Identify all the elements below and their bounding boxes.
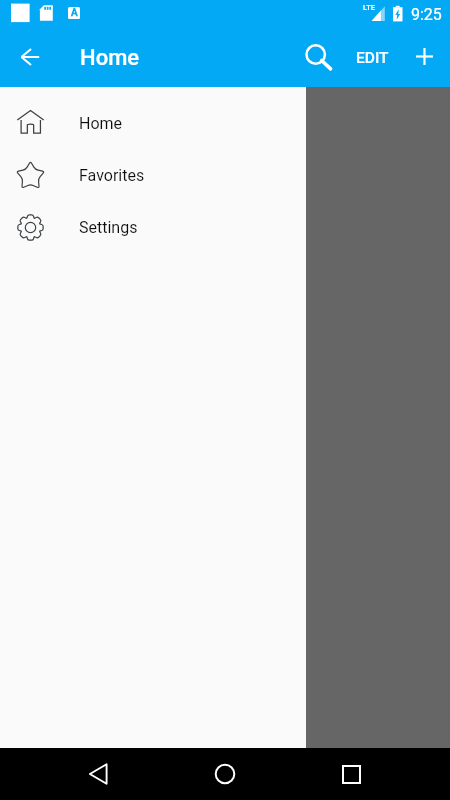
button[interactable]: Navigate up: [8, 33, 56, 81]
button[interactable]: Home: [201, 750, 249, 798]
button[interactable]: Settings: [0, 201, 306, 253]
staticText: Settings: [79, 218, 138, 237]
button[interactable]: Recent apps: [327, 750, 375, 798]
button[interactable]: EDIT: [346, 27, 398, 88]
button[interactable]: Favorites: [0, 149, 306, 201]
staticText: 9:25: [411, 5, 442, 24]
staticText: Home: [79, 114, 123, 133]
staticText: EDIT: [356, 49, 389, 67]
staticText: A: [71, 7, 78, 19]
staticText: Home: [80, 45, 140, 71]
button[interactable]: Search: [295, 33, 343, 81]
button[interactable]: Home: [0, 97, 306, 149]
button[interactable]: Back: [75, 750, 123, 798]
staticText: LTE: [363, 3, 376, 12]
staticText: Favorites: [79, 166, 145, 185]
button[interactable]: Add: [400, 32, 448, 80]
